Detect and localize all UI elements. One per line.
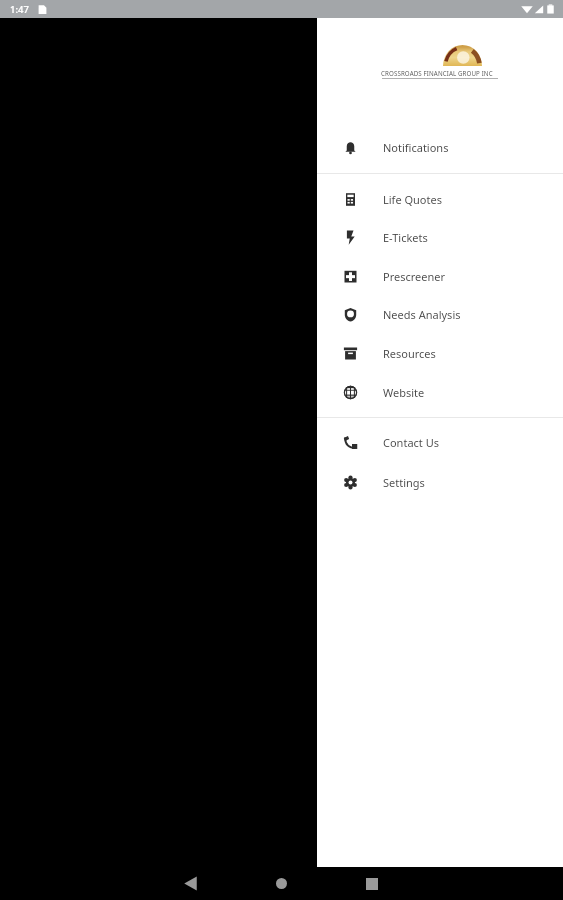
button[interactable]: Contact Us bbox=[317, 423, 563, 461]
button[interactable]: Prescreener bbox=[317, 257, 563, 295]
button[interactable]: Life Quotes bbox=[317, 180, 563, 218]
button[interactable]: Resources bbox=[317, 334, 563, 372]
staticText: Prescreener bbox=[383, 269, 446, 284]
button[interactable]: Website bbox=[317, 373, 563, 411]
button[interactable]: Home bbox=[258, 869, 305, 898]
button[interactable]: Settings bbox=[317, 463, 563, 501]
staticText: Settings bbox=[383, 475, 425, 490]
button[interactable]: Needs Analysis bbox=[317, 295, 563, 333]
staticText: Resources bbox=[383, 346, 436, 361]
button[interactable]: E-Tickets bbox=[317, 218, 563, 256]
staticText: Contact Us bbox=[383, 435, 439, 450]
staticText: E-Tickets bbox=[383, 230, 428, 245]
button[interactable]: Recents bbox=[348, 869, 395, 898]
staticText: Needs Analysis bbox=[383, 307, 461, 322]
button[interactable]: Notifications bbox=[317, 128, 563, 166]
staticText: 1:47 bbox=[10, 3, 29, 16]
staticText: Website bbox=[383, 385, 425, 400]
staticText: CROSSROADS FINANCIAL GROUP INC bbox=[381, 69, 493, 77]
button[interactable]: Back bbox=[167, 869, 214, 898]
staticText: Life Quotes bbox=[383, 192, 442, 207]
staticText: Notifications bbox=[383, 140, 449, 155]
